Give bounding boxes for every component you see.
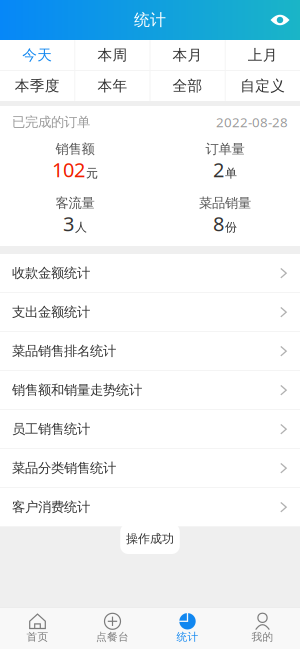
staticText: 菜品分类销售统计 [12, 460, 116, 476]
staticText: 3 [63, 210, 74, 237]
button[interactable]: 客户消费统计 [0, 488, 300, 527]
button[interactable]: 菜品分类销售统计 [0, 449, 300, 488]
staticText: 菜品销售排名统计 [12, 343, 116, 359]
staticText: 单 [225, 166, 237, 181]
button[interactable]: 自定义 [225, 71, 300, 101]
button[interactable]: 统计 [150, 608, 225, 649]
button[interactable]: 支出金额统计 [0, 293, 300, 332]
staticText: 订单量 [205, 141, 244, 157]
staticText: 本周 [97, 46, 127, 64]
staticText: 收款金额统计 [12, 265, 90, 281]
staticText: 点餐台 [96, 630, 129, 643]
staticText: 2022-08-28 [216, 113, 288, 131]
staticText: 首页 [26, 630, 48, 643]
staticText: 销售额和销量走势统计 [12, 382, 142, 398]
button[interactable]: 本月 [150, 40, 225, 70]
staticText: 员工销售统计 [12, 421, 90, 437]
staticText: 已完成的订单 [12, 114, 90, 130]
staticText: 本月 [173, 46, 203, 64]
staticText: 元 [86, 166, 98, 181]
staticText: 本季度 [15, 77, 60, 95]
button[interactable]: 收款金额统计 [0, 254, 300, 293]
staticText: 客流量 [55, 195, 94, 211]
staticText: 我的 [251, 630, 273, 643]
button[interactable]: 首页 [0, 608, 75, 649]
button[interactable]: 员工销售统计 [0, 410, 300, 449]
button[interactable]: 我的 [225, 608, 300, 649]
button[interactable]: 本季度 [0, 71, 74, 101]
staticText: 菜品销量 [199, 195, 251, 211]
button[interactable]: 菜品销售排名统计 [0, 332, 300, 371]
staticText: 统计 [176, 630, 198, 643]
staticText: 支出金额统计 [12, 304, 90, 320]
staticText: 份 [225, 220, 237, 235]
staticText: 自定义 [240, 77, 285, 95]
staticText: 2 [213, 156, 224, 183]
staticText: 本年 [97, 77, 127, 95]
staticText: 客户消费统计 [12, 499, 90, 515]
button[interactable]: 销售额和销量走势统计 [0, 371, 300, 410]
button[interactable]: 今天 [0, 40, 74, 70]
staticText: 上月 [248, 46, 278, 64]
staticText: 操作成功 [126, 531, 174, 546]
button[interactable]: 点餐台 [75, 608, 150, 649]
staticText: 今天 [22, 46, 52, 64]
button[interactable]: 显示金额 [260, 0, 300, 40]
staticText: 人 [75, 220, 87, 235]
staticText: 统计 [134, 10, 166, 30]
staticText: 销售额 [55, 141, 94, 157]
button[interactable]: 全部 [150, 71, 225, 101]
staticText: 全部 [173, 77, 203, 95]
staticText: 8 [213, 210, 224, 237]
button[interactable]: 上月 [225, 40, 300, 70]
button[interactable]: 本周 [75, 40, 150, 70]
staticText: 102 [52, 156, 85, 183]
button[interactable]: 本年 [75, 71, 150, 101]
